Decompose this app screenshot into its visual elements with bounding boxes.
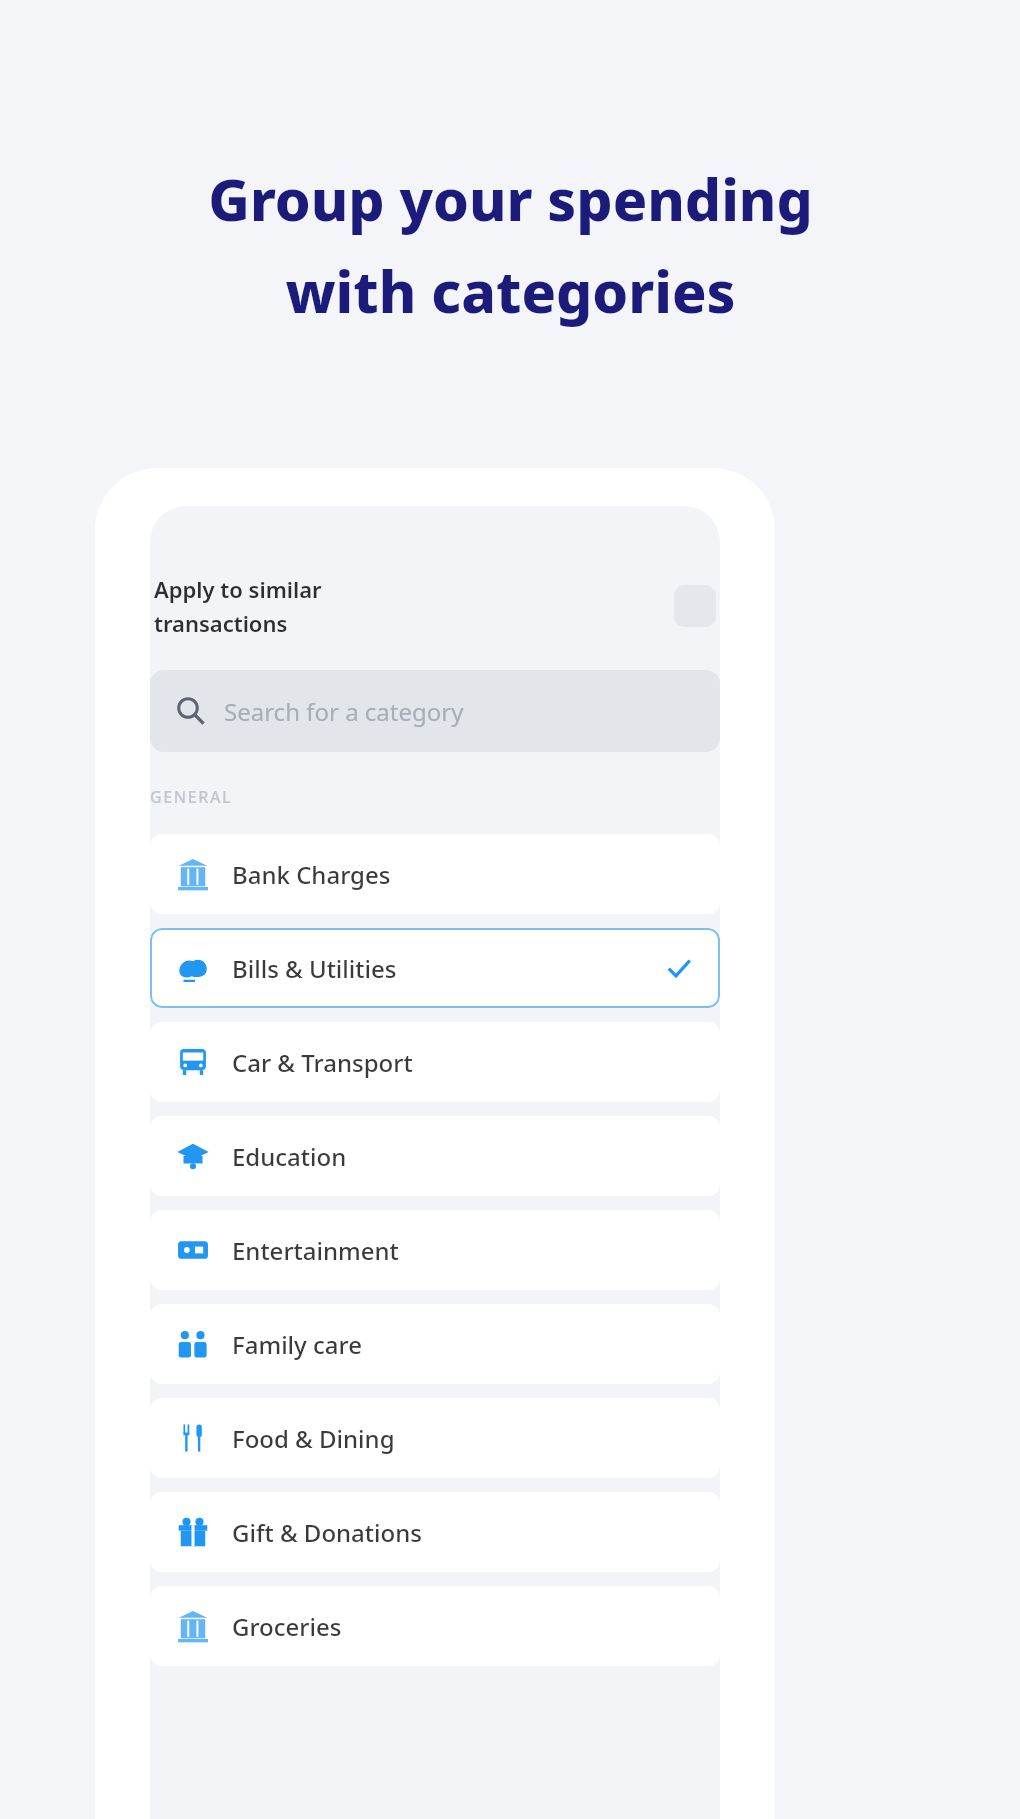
staticText: Group your spending <box>208 160 813 238</box>
button[interactable]: Apply to similar transactions toggle <box>674 585 716 627</box>
button[interactable]: Entertainment <box>150 1210 720 1290</box>
staticText: Groceries <box>232 1610 694 1643</box>
staticText: Food & Dining <box>232 1422 694 1455</box>
button[interactable]: Bills & Utilities <box>150 928 720 1008</box>
staticText: Education <box>232 1140 694 1173</box>
staticText: Bills & Utilities <box>232 952 664 985</box>
button[interactable]: Groceries <box>150 1586 720 1666</box>
button[interactable]: Family care <box>150 1304 720 1384</box>
staticText: Entertainment <box>232 1234 694 1267</box>
staticText: Apply to similar transactions <box>154 574 674 638</box>
button[interactable]: Car & Transport <box>150 1022 720 1102</box>
staticText: with categories <box>285 252 736 330</box>
button[interactable]: Gift & Donations <box>150 1492 720 1572</box>
button[interactable]: Bank Charges <box>150 834 720 914</box>
button[interactable]: Food & Dining <box>150 1398 720 1478</box>
button[interactable]: Apply to similar transactions <box>150 574 720 638</box>
staticText: Search for a category <box>224 695 464 728</box>
staticText: Bank Charges <box>232 858 694 891</box>
staticText: GENERAL <box>150 786 233 808</box>
staticText: Family care <box>232 1328 694 1361</box>
button[interactable]: Education <box>150 1116 720 1196</box>
button[interactable]: Search for a category <box>150 670 720 752</box>
staticText: Gift & Donations <box>232 1516 694 1549</box>
staticText: Car & Transport <box>232 1046 694 1079</box>
